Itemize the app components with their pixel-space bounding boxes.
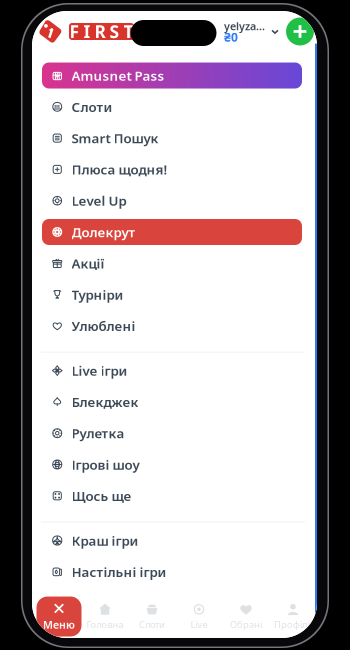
button[interactable]: Ігрові шоу: [32, 451, 302, 477]
staticText: T: [123, 20, 133, 43]
button[interactable]: Улюблені: [32, 313, 302, 339]
staticText: Головна: [86, 618, 123, 631]
button[interactable]: Турніри: [32, 282, 302, 308]
staticText: Акції: [71, 254, 104, 272]
button[interactable]: Рулетка: [32, 420, 302, 446]
button[interactable]: Слоти: [32, 94, 302, 120]
button[interactable]: Головна: [81, 595, 128, 638]
button[interactable]: Щось ще: [32, 483, 302, 509]
staticText: S: [109, 20, 119, 43]
button[interactable]: Обрані: [222, 595, 269, 638]
button[interactable]: Live: [175, 595, 222, 638]
button[interactable]: Account: [224, 17, 280, 45]
staticText: Долекрут: [71, 223, 135, 241]
staticText: Слоти: [71, 98, 112, 116]
staticText: ₴0: [224, 29, 238, 45]
button[interactable]: Amusnet Pass: [32, 62, 302, 88]
staticText: Плюса щодня!: [71, 160, 167, 178]
button[interactable]: Smart Пошук: [32, 125, 302, 151]
staticText: Краш ігри: [71, 532, 138, 549]
staticText: Level Up: [71, 192, 126, 209]
staticText: yelyza...: [224, 19, 265, 33]
staticText: Live ігри: [71, 362, 127, 379]
staticText: F: [69, 20, 79, 43]
staticText: Обрані: [230, 618, 262, 631]
button[interactable]: Профіль: [269, 595, 316, 638]
staticText: Турніри: [71, 286, 123, 303]
button[interactable]: Блекджек: [32, 389, 302, 415]
staticText: Настільні ігри: [71, 563, 166, 581]
button[interactable]: Меню: [36, 596, 81, 636]
staticText: Блекджек: [71, 393, 138, 411]
button[interactable]: Deposit: [280, 17, 317, 45]
staticText: Ігрові шоу: [71, 456, 139, 473]
button[interactable]: Level Up: [32, 188, 302, 214]
button[interactable]: Настільні ігри: [32, 559, 302, 585]
staticText: R: [94, 20, 105, 43]
staticText: Слоти: [139, 618, 165, 631]
staticText: Live: [190, 618, 207, 631]
button[interactable]: Долекрут: [32, 219, 302, 245]
staticText: Щось ще: [71, 487, 131, 505]
staticText: Улюблені: [71, 317, 135, 335]
staticText: Рулетка: [71, 424, 124, 442]
staticText: Smart Пошук: [71, 129, 158, 147]
button[interactable]: Плюса щодня!: [32, 156, 302, 182]
staticText: I: [83, 20, 90, 43]
button[interactable]: Краш ігри: [32, 527, 302, 553]
button[interactable]: FIRST home: [32, 18, 134, 45]
button[interactable]: Слоти: [128, 595, 175, 638]
staticText: Профіль: [274, 618, 312, 631]
button[interactable]: Акції: [32, 250, 302, 276]
button[interactable]: Live ігри: [32, 358, 302, 384]
staticText: Меню: [43, 617, 75, 632]
staticText: Amusnet Pass: [71, 67, 164, 84]
